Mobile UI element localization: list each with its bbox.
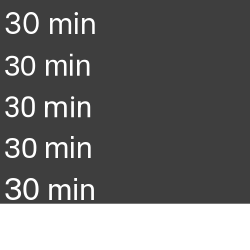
staticText: 30 min <box>4 172 96 207</box>
staticText: 30 min <box>4 132 93 164</box>
staticText: 30 min <box>4 215 103 249</box>
staticText: 30 min <box>4 49 91 82</box>
staticText: 30 min <box>4 90 92 124</box>
staticText: 30 min <box>4 6 97 41</box>
